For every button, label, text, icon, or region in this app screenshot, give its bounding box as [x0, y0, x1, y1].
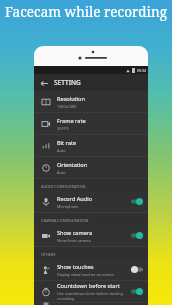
staticText: Show camera [57, 229, 93, 237]
staticText: OTHERS [41, 252, 56, 257]
staticText: Bit rate [57, 139, 77, 147]
staticText: Frame rate [57, 117, 86, 125]
button[interactable]: Show camera [34, 225, 148, 246]
button[interactable]: Back [34, 74, 148, 91]
staticText: Auto [57, 148, 66, 153]
staticText: AUDIO CONFIGURATION [41, 184, 86, 189]
staticText: Record Audio [57, 195, 93, 203]
staticText: 30 FPS [57, 126, 69, 131]
button[interactable]: Resolution [34, 91, 148, 112]
staticText: Use countdown timer before starting reco… [57, 291, 131, 301]
button[interactable]: Countdown before start toggle [131, 288, 143, 295]
button[interactable]: Countdown before start [34, 281, 148, 302]
staticText: Countdown before start [57, 282, 120, 290]
button[interactable]: Show camera toggle [131, 232, 143, 239]
button[interactable]: Back [39, 78, 49, 88]
button[interactable]: Bit rate [34, 135, 148, 156]
staticText: SETTING [54, 78, 81, 87]
staticText: CAMERA CONFIGURATION [41, 218, 89, 223]
staticText: Show touches [57, 263, 94, 271]
button[interactable]: Record Audio [34, 191, 148, 212]
staticText: Show front camera [57, 238, 91, 243]
staticText: Microphone [57, 204, 79, 209]
button[interactable]: Show touches [34, 259, 148, 280]
staticText: Auto [57, 170, 66, 175]
button[interactable]: Countdown value [34, 303, 148, 305]
staticText: 09:34 [137, 68, 146, 73]
staticText: Display show touches on screen [57, 272, 114, 277]
staticText: Facecam while recording [0, 3, 172, 21]
button[interactable]: Record Audio toggle [131, 198, 143, 205]
button[interactable]: Orientation [34, 157, 148, 178]
staticText: 1920x1080 [57, 104, 77, 109]
button[interactable]: Frame rate [34, 113, 148, 134]
staticText: Resolution [57, 95, 85, 103]
staticText: Orientation [57, 161, 88, 169]
button[interactable]: Show touches toggle [131, 266, 143, 273]
